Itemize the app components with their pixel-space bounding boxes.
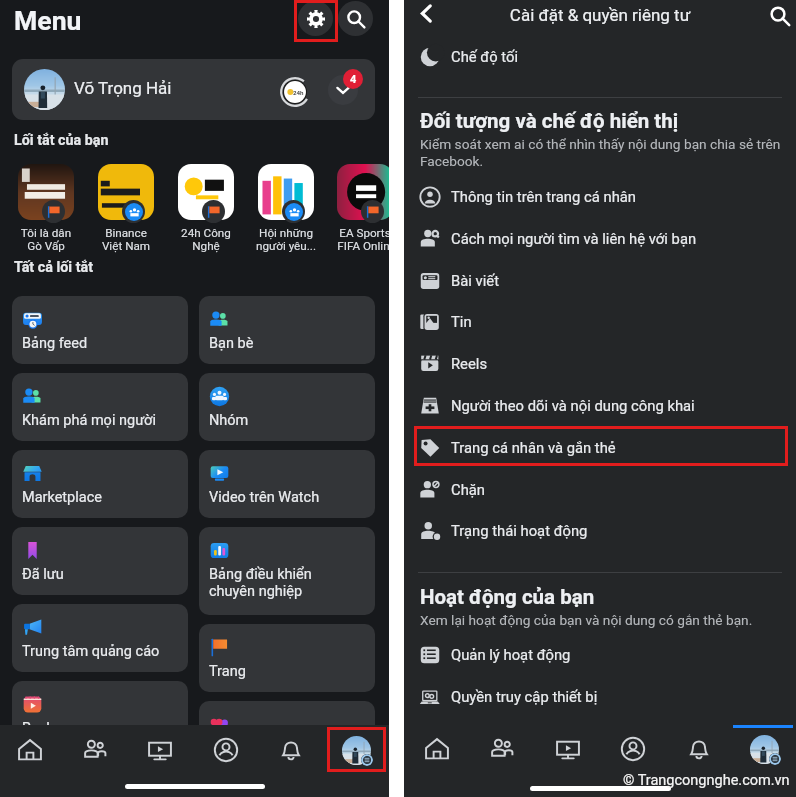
- button[interactable]: Watch: [135, 725, 185, 775]
- button[interactable]: Menu: [739, 724, 789, 774]
- button[interactable]: Marketplace: [12, 450, 188, 518]
- button[interactable]: Profile: [201, 725, 251, 775]
- staticText: Bảng feed: [22, 335, 88, 352]
- button[interactable]: Người theo dõi và nội dung công khai: [404, 386, 796, 428]
- staticText: Lối tắt của bạn: [14, 132, 109, 149]
- staticText: © Trangcongnghe.com.vn: [623, 772, 790, 789]
- staticText: EA Sports FIFA Onlin.: [325, 226, 405, 253]
- button[interactable]: Notifications: [674, 724, 724, 774]
- button[interactable]: Võ Trọng Hải: [12, 59, 375, 120]
- button[interactable]: Quyền truy cập thiết bị: [404, 677, 796, 719]
- button[interactable]: Back: [411, 0, 442, 29]
- button[interactable]: Cách mọi người tìm và liên hệ với bạn: [404, 219, 796, 261]
- staticText: Khám phá mọi người: [22, 412, 156, 429]
- button[interactable]: Tin: [404, 302, 796, 344]
- staticText: Bạn bè: [209, 335, 254, 352]
- staticText: Cài đặt & quyền riêng tư: [404, 5, 796, 25]
- button[interactable]: Menu: [331, 725, 381, 775]
- button[interactable]: Bài viết: [404, 261, 796, 303]
- button[interactable]: Trang cá nhân và gắn thẻ: [404, 428, 796, 470]
- button[interactable]: EA Sports FIFA Onlin.: [325, 164, 405, 256]
- button[interactable]: Settings: [298, 1, 333, 36]
- button[interactable]: Bảng điều khiển chuyên nghiệp: [199, 527, 375, 615]
- button[interactable]: Friends: [477, 724, 527, 774]
- staticText: Chặn: [451, 481, 486, 498]
- staticText: Đối tượng và chế độ hiển thị: [420, 109, 679, 133]
- staticText: Trạng thái hoạt động: [451, 522, 588, 539]
- button[interactable]: Notifications: [266, 725, 316, 775]
- staticText: Kỷ niệm: [209, 740, 261, 757]
- button[interactable]: Home: [5, 725, 55, 775]
- button[interactable]: Tôi là dân Gò Vấp: [6, 164, 86, 256]
- button[interactable]: Kỷ niệm: [199, 701, 375, 769]
- staticText: Trang cá nhân và gắn thẻ: [451, 439, 616, 456]
- button[interactable]: Binance Việt Nam: [86, 164, 166, 256]
- button[interactable]: Reels: [12, 681, 188, 749]
- button[interactable]: Đã lưu: [12, 527, 188, 595]
- button[interactable]: Chế độ tối: [404, 37, 796, 79]
- staticText: Bài viết: [451, 272, 499, 289]
- button[interactable]: Trung tâm quảng cáo: [12, 604, 188, 672]
- staticText: Người theo dõi và nội dung công khai: [451, 397, 695, 414]
- staticText: Tin: [451, 313, 472, 330]
- button[interactable]: Quản lý hoạt động: [404, 635, 796, 677]
- staticText: Menu: [14, 5, 82, 36]
- staticText: Võ Trọng Hải: [74, 78, 172, 98]
- button[interactable]: Chặn: [404, 470, 796, 512]
- staticText: Quản lý hoạt động: [451, 646, 571, 663]
- staticText: Chế độ tối: [451, 48, 518, 65]
- staticText: Thông tin trên trang cá nhân: [451, 188, 637, 205]
- staticText: Reels: [22, 720, 58, 737]
- staticText: Trang: [209, 663, 246, 680]
- staticText: Tôi là dân Gò Vấp: [6, 226, 86, 253]
- staticText: Cách mọi người tìm và liên hệ với bạn: [451, 230, 697, 247]
- staticText: Binance Việt Nam: [86, 226, 166, 253]
- staticText: 24h Công Nghệ: [166, 226, 246, 253]
- button[interactable]: Nhóm: [199, 373, 375, 441]
- button[interactable]: Search: [338, 1, 373, 36]
- staticText: Bảng điều khiển chuyên nghiệp: [209, 566, 312, 600]
- staticText: 4: [350, 73, 357, 86]
- staticText: 24h: [293, 89, 304, 96]
- staticText: Nhóm: [209, 412, 249, 429]
- button[interactable]: Watch: [543, 724, 593, 774]
- button[interactable]: Reels: [404, 344, 796, 386]
- staticText: Marketplace: [22, 489, 102, 506]
- button[interactable]: Search: [764, 0, 795, 31]
- staticText: Video trên Watch: [209, 489, 320, 506]
- staticText: Hội những người yêu...: [246, 226, 326, 253]
- button[interactable]: Thông tin trên trang cá nhân: [404, 177, 796, 219]
- staticText: Kiểm soát xem ai có thể nhìn thấy nội du…: [420, 136, 786, 170]
- staticText: Xem lại hoạt động của bạn và nội dung có…: [420, 612, 753, 628]
- staticText: Reels: [451, 355, 488, 372]
- button[interactable]: Profile: [608, 724, 658, 774]
- button[interactable]: Friends: [70, 725, 120, 775]
- staticText: Tất cả lối tắt: [14, 259, 93, 276]
- staticText: Đã lưu: [22, 566, 64, 583]
- button[interactable]: Video trên Watch: [199, 450, 375, 518]
- button[interactable]: Hội những người yêu...: [246, 164, 326, 256]
- button[interactable]: Khám phá mọi người: [12, 373, 188, 441]
- button[interactable]: Bảng feed: [12, 296, 188, 364]
- button[interactable]: Home: [412, 724, 462, 774]
- button[interactable]: Trạng thái hoạt động: [404, 511, 796, 553]
- staticText: Quyền truy cập thiết bị: [451, 688, 598, 705]
- button[interactable]: 24h Công Nghệ: [166, 164, 246, 256]
- staticText: Trung tâm quảng cáo: [22, 643, 160, 660]
- button[interactable]: Bạn bè: [199, 296, 375, 364]
- staticText: Hoạt động của bạn: [420, 585, 595, 609]
- button[interactable]: Trang: [199, 624, 375, 692]
